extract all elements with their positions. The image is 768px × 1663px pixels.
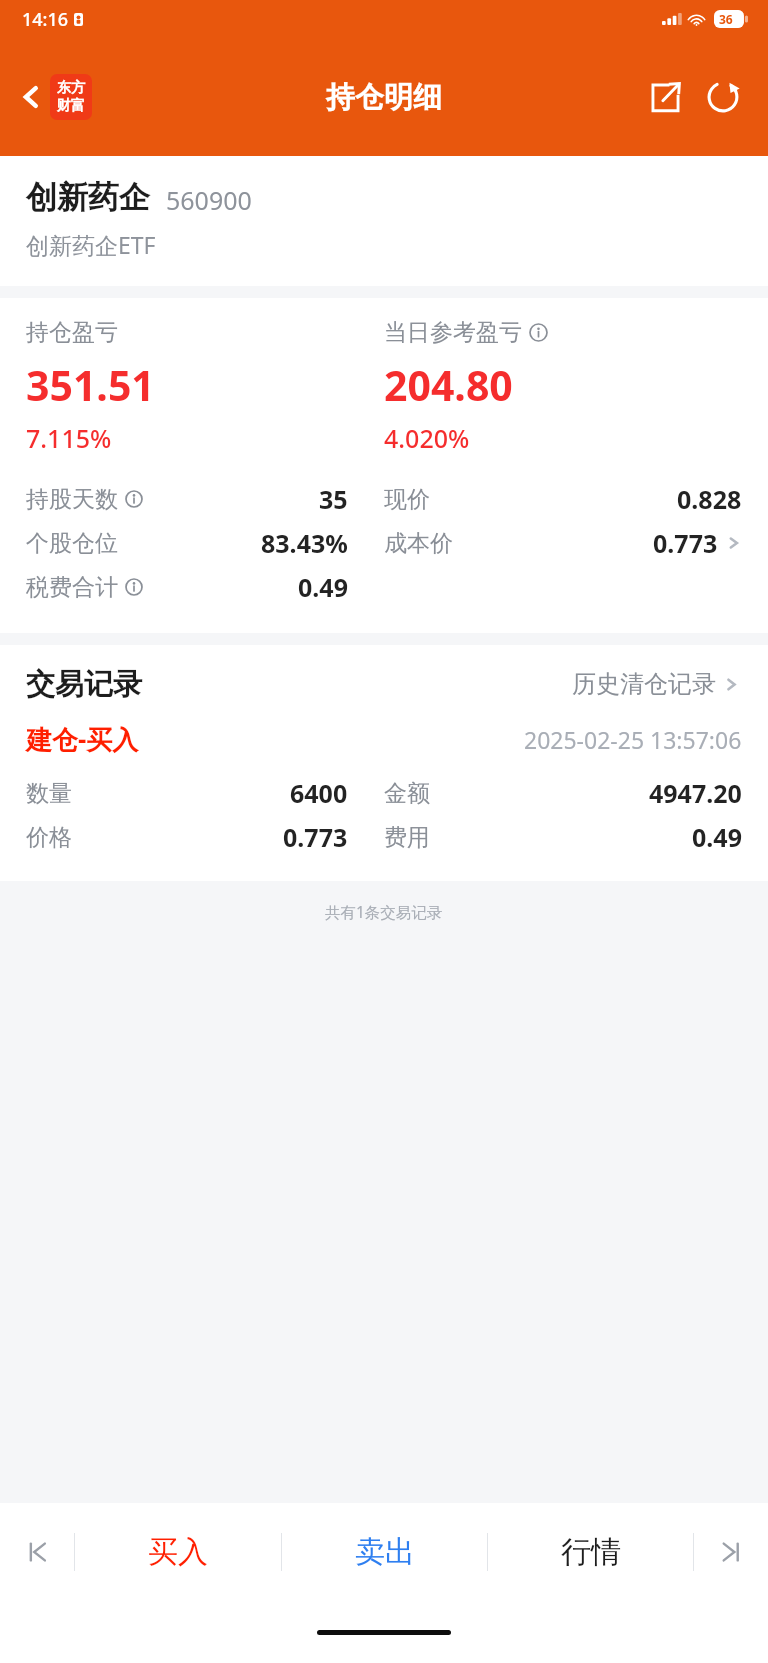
staticText: 卖出 xyxy=(355,1533,415,1571)
staticText: 共有1条交易记录 xyxy=(325,901,443,922)
staticText: 36 xyxy=(719,11,733,27)
staticText: 83.43% xyxy=(261,526,348,560)
staticText: 创新药企 xyxy=(26,178,150,217)
staticText: 2025-02-25 13:57:06 xyxy=(524,724,742,755)
button[interactable]: Next xyxy=(694,1503,768,1601)
staticText: 4947.20 xyxy=(649,776,742,810)
staticText: 买入 xyxy=(148,1533,208,1571)
staticText: 7.115% xyxy=(26,421,112,455)
staticText: 351.51 xyxy=(26,357,155,413)
staticText: 费用 xyxy=(384,823,430,852)
staticText: 204.80 xyxy=(384,357,513,413)
staticText: 0.773 xyxy=(653,526,718,560)
button[interactable]: 买入 xyxy=(75,1503,281,1601)
staticText: 持股天数 xyxy=(26,485,118,514)
staticText: 当日参考盈亏 xyxy=(384,318,522,347)
staticText: 0.49 xyxy=(692,820,742,854)
staticText: 4.020% xyxy=(384,421,470,455)
staticText: 财富 xyxy=(57,97,85,115)
staticText: 560900 xyxy=(166,183,252,217)
staticText: 东方 xyxy=(57,79,85,97)
staticText: 现价 xyxy=(384,485,430,514)
staticText: 14:16 xyxy=(22,7,69,32)
staticText: 0.49 xyxy=(298,570,348,604)
staticText: 6400 xyxy=(290,776,348,810)
button[interactable]: Share xyxy=(640,72,690,122)
staticText: 成本价 xyxy=(384,529,453,558)
button[interactable]: Refresh xyxy=(698,72,748,122)
staticText: 创新药企ETF xyxy=(26,229,156,260)
staticText: 价格 xyxy=(26,823,72,852)
staticText: 税费合计 xyxy=(26,573,118,602)
staticText: 建仓-买入 xyxy=(26,721,139,757)
staticText: 持仓明细 xyxy=(326,79,442,116)
staticText: 历史清仓记录 xyxy=(572,669,716,699)
staticText: 0.828 xyxy=(677,482,742,516)
staticText: 个股仓位 xyxy=(26,529,118,558)
staticText: 0.773 xyxy=(283,820,348,854)
other: Back xyxy=(14,80,48,114)
staticText: 持仓盈亏 xyxy=(26,318,118,347)
staticText: 行情 xyxy=(561,1533,621,1571)
button[interactable]: Back xyxy=(14,74,92,120)
button[interactable]: Previous xyxy=(0,1503,74,1601)
button[interactable]: 行情 xyxy=(488,1503,693,1601)
staticText: 交易记录 xyxy=(26,666,142,703)
button[interactable]: 卖出 xyxy=(282,1503,487,1601)
staticText: 金额 xyxy=(384,779,430,808)
staticText: 数量 xyxy=(26,779,72,808)
button[interactable]: 历史清仓记录 xyxy=(566,663,746,705)
staticText: 35 xyxy=(319,482,348,516)
